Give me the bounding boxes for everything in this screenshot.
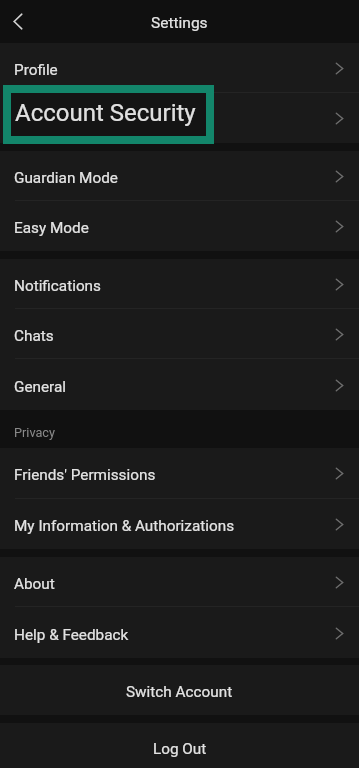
staticText: My Information & Authorizations — [14, 517, 235, 535]
staticText: Switch Account — [126, 683, 233, 701]
staticText: Account Security — [15, 99, 196, 127]
button[interactable]: Easy Mode — [0, 201, 359, 251]
staticText: Privacy — [14, 425, 55, 440]
staticText: Log Out — [153, 740, 207, 758]
button[interactable]: Guardian Mode — [0, 151, 359, 200]
button[interactable]: General — [0, 359, 359, 410]
button[interactable] — [0, 93, 359, 143]
staticText: Guardian Mode — [14, 169, 118, 187]
button[interactable]: Help & Feedback — [0, 607, 359, 658]
button[interactable]: Log Out — [0, 723, 359, 768]
staticText: Chats — [14, 327, 54, 345]
staticText: General — [14, 378, 67, 396]
button[interactable]: Switch Account — [0, 665, 359, 715]
button[interactable]: Profile — [0, 43, 359, 92]
staticText: Easy Mode — [14, 219, 89, 237]
staticText: Friends' Permissions — [14, 466, 156, 484]
staticText: Settings — [151, 14, 208, 32]
button[interactable]: Account Security — [11, 93, 206, 136]
button[interactable]: About — [0, 557, 359, 606]
button[interactable]: Chats — [0, 309, 359, 358]
staticText: Notifications — [14, 277, 101, 295]
staticText: Profile — [14, 61, 58, 79]
button[interactable]: Notifications — [0, 259, 359, 308]
staticText: Help & Feedback — [14, 626, 129, 644]
button[interactable]: Back — [0, 0, 36, 43]
staticText: About — [14, 575, 55, 593]
button[interactable]: My Information & Authorizations — [0, 499, 359, 549]
button[interactable]: Friends' Permissions — [0, 448, 359, 498]
